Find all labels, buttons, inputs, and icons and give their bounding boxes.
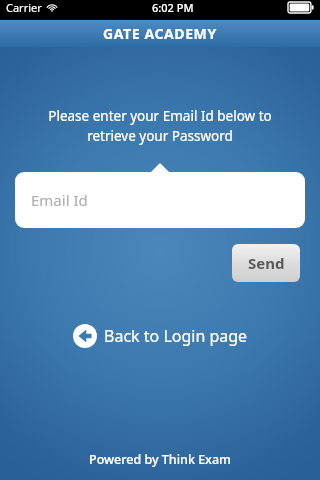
other: Back [73, 324, 97, 348]
staticText: Powered by Think Exam [89, 451, 231, 468]
staticText: Email Id [31, 190, 88, 210]
button[interactable]: Email Id [15, 172, 305, 228]
staticText: Carrier [6, 0, 42, 15]
button[interactable]: Back [65, 320, 256, 352]
staticText: Send [248, 253, 285, 273]
staticText: Please enter your Email Id below to retr… [48, 107, 272, 145]
staticText: Back to Login page [104, 325, 248, 347]
button[interactable]: Send [232, 244, 300, 282]
staticText: GATE ACADEMY [103, 24, 217, 43]
staticText: 6:02 PM [152, 0, 194, 15]
